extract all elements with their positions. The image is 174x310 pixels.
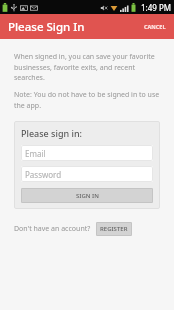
staticText: 1:49 PM	[141, 2, 172, 13]
staticText: When signed in, you can save your favori…	[14, 52, 160, 82]
button[interactable]: Email	[21, 145, 153, 161]
staticText: Please Sign In	[8, 19, 85, 35]
staticText: Note: You do not have to be signed in to…	[14, 90, 160, 110]
staticText: Password	[25, 169, 62, 180]
button[interactable]: REGISTER	[96, 222, 132, 236]
staticText: Please sign in:	[21, 127, 83, 139]
staticText: REGISTER	[100, 225, 128, 233]
staticText: Email	[25, 148, 46, 159]
button[interactable]: Password	[21, 166, 153, 182]
staticText: Don't have an account?	[14, 224, 91, 234]
staticText: CANCEL	[144, 23, 166, 30]
button[interactable]: CANCEL	[141, 20, 169, 33]
button[interactable]: SIGN IN	[21, 188, 153, 203]
staticText: SIGN IN	[76, 192, 99, 200]
